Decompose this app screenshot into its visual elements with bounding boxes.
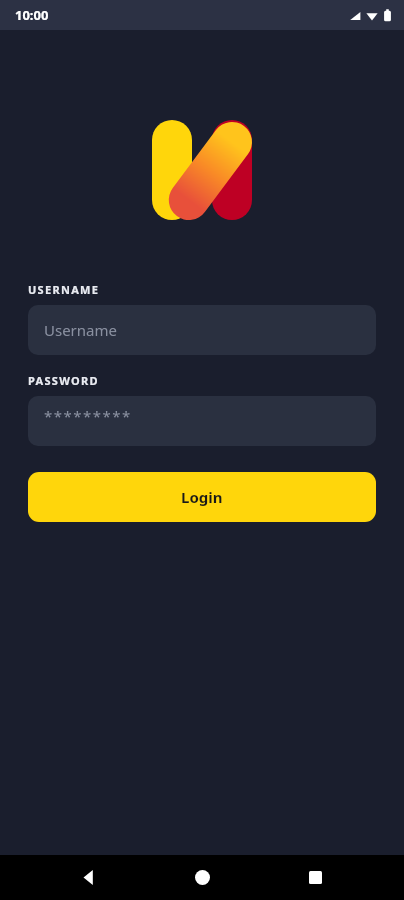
button[interactable]: Login [28, 472, 376, 522]
button[interactable]: Home [178, 855, 226, 900]
staticText: 10:00 [15, 6, 49, 24]
staticText: ********* [44, 406, 132, 426]
staticText: USERNAME [28, 282, 100, 297]
button[interactable]: Back [65, 855, 113, 900]
button[interactable]: Username [28, 305, 376, 355]
staticText: Login [181, 487, 223, 507]
staticText: PASSWORD [28, 373, 99, 388]
staticText: Username [44, 320, 117, 340]
button[interactable]: Recent apps [291, 855, 339, 900]
button[interactable]: ********* [28, 396, 376, 446]
